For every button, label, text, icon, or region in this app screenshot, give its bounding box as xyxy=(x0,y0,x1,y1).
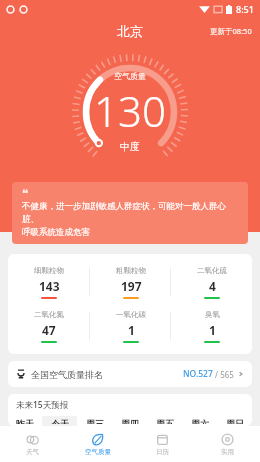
staticText: 天气 xyxy=(26,448,39,456)
staticText: 昨天 xyxy=(16,418,34,424)
staticText: 二氧化硫 xyxy=(197,266,227,275)
button[interactable]: 周三 xyxy=(77,416,112,426)
staticText: 周四 xyxy=(121,418,139,424)
staticText: 今天 xyxy=(51,418,69,424)
staticText: 130 xyxy=(94,82,166,139)
staticText: 一氧化碳 xyxy=(116,310,146,319)
staticText: 周日 xyxy=(226,418,244,424)
staticText: 1 xyxy=(209,322,216,338)
staticText: 全国空气质量排名 xyxy=(31,369,103,380)
staticText: 臭氧 xyxy=(205,310,220,319)
staticText: 周五 xyxy=(156,418,174,424)
button[interactable]: 实用 xyxy=(195,426,260,462)
staticText: 北京 xyxy=(117,23,143,39)
staticText: 197 xyxy=(121,278,142,294)
button[interactable]: 空气质量 xyxy=(65,426,130,462)
button[interactable]: 周五 xyxy=(147,416,182,426)
staticText: 细颗粒物 xyxy=(34,266,64,275)
staticText: 中度 xyxy=(120,140,140,153)
button[interactable]: 全国空气质量排名 xyxy=(8,361,252,387)
staticText: 143 xyxy=(39,278,60,294)
button[interactable]: 周日 xyxy=(217,416,252,426)
staticText: 二氧化氮 xyxy=(34,310,64,319)
button[interactable]: 粗颗粒物 xyxy=(90,260,171,304)
staticText: NO.527 xyxy=(183,368,213,380)
staticText: 空气质量 xyxy=(114,71,146,81)
button[interactable]: ❝ xyxy=(12,182,248,244)
staticText: 8:51 xyxy=(236,3,254,15)
button[interactable]: 二氧化硫 xyxy=(171,260,252,304)
button[interactable]: 细颗粒物 xyxy=(8,260,90,304)
staticText: 实用 xyxy=(221,448,234,456)
staticText: / 565 xyxy=(213,369,234,380)
staticText: 1 xyxy=(128,322,135,338)
staticText: 日历 xyxy=(156,448,169,456)
staticText: 未来15天预报 xyxy=(16,399,69,411)
staticText: ❝ xyxy=(22,187,29,200)
button[interactable]: 日历 xyxy=(130,426,195,462)
staticText: 周三 xyxy=(86,418,104,424)
button[interactable]: 昨天 xyxy=(8,416,42,426)
button[interactable]: 臭氧 xyxy=(171,304,252,348)
staticText: 4 xyxy=(209,278,216,294)
button[interactable]: 天气 xyxy=(0,426,65,462)
staticText: 粗颗粒物 xyxy=(116,266,146,275)
staticText: 不健康，进一步加剧敏感人群症状，可能对一般人群心脏、 呼吸系统造成危害 xyxy=(22,201,238,237)
button[interactable]: 周六 xyxy=(182,416,217,426)
staticText: 周六 xyxy=(191,418,209,424)
button[interactable]: 二氧化氮 xyxy=(8,304,90,348)
staticText: 空气质量 xyxy=(85,448,111,456)
staticText: 47 xyxy=(42,322,56,338)
button[interactable]: 一氧化碳 xyxy=(90,304,171,348)
button[interactable]: 更新于08:50 xyxy=(210,26,252,36)
button[interactable]: 今天 xyxy=(42,416,77,426)
button[interactable]: 周四 xyxy=(112,416,147,426)
